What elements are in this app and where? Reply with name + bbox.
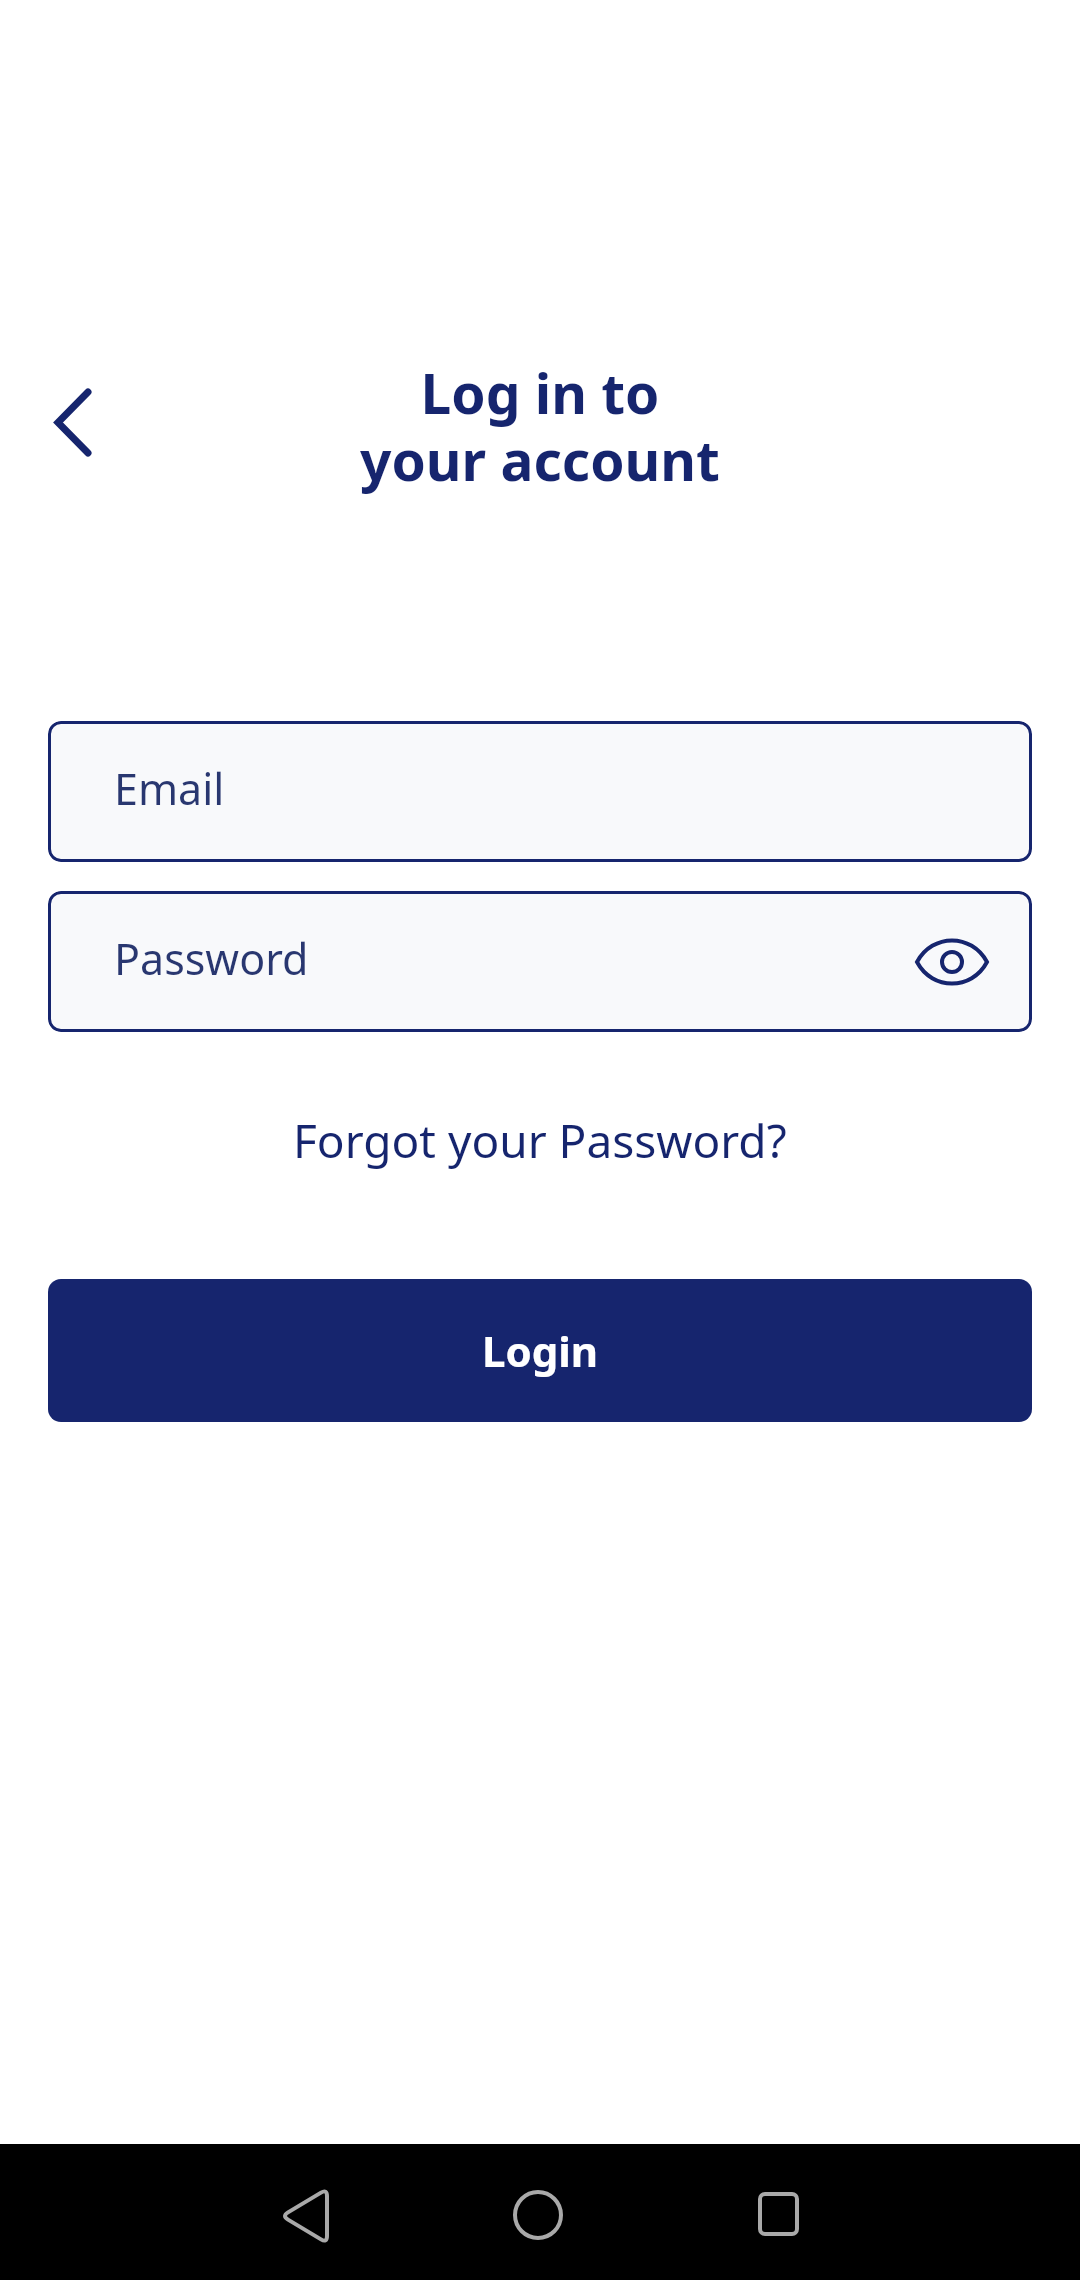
staticText: Log in to your account	[0, 355, 1080, 497]
button[interactable]: Password	[48, 891, 1032, 1032]
button[interactable]: Login	[48, 1279, 1032, 1422]
staticText: Email	[114, 759, 225, 818]
staticText: Login	[482, 1322, 599, 1379]
button[interactable]	[746, 2182, 810, 2246]
button[interactable]	[506, 2183, 570, 2247]
button[interactable]	[916, 932, 988, 992]
button[interactable]	[43, 386, 103, 458]
staticText: Password	[114, 929, 309, 988]
button[interactable]: Email	[48, 721, 1032, 862]
button[interactable]: Forgot your Password?	[293, 1109, 787, 1172]
button[interactable]	[272, 2179, 336, 2252]
